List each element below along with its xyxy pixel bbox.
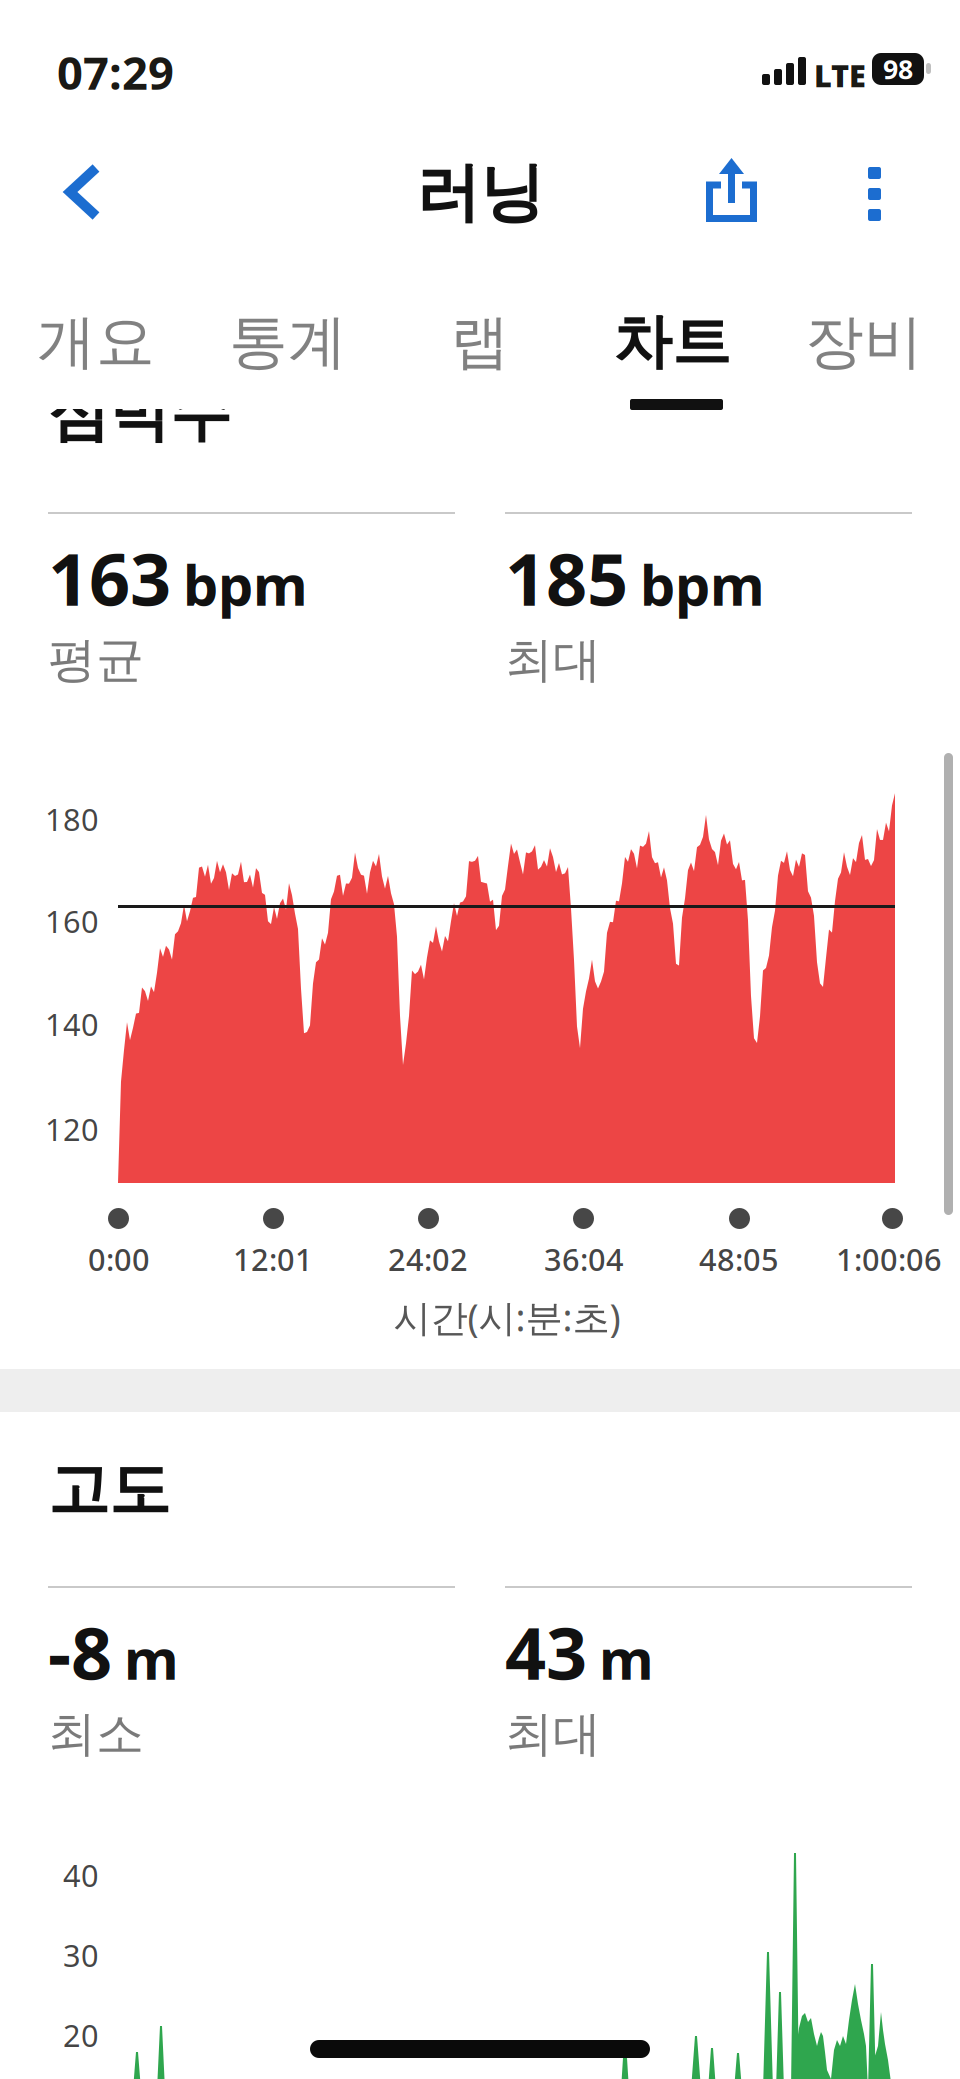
staticText: bpm bbox=[640, 547, 765, 621]
staticText: 평균 bbox=[48, 631, 144, 690]
staticText: 36:04 bbox=[544, 1239, 624, 1279]
staticText: m bbox=[599, 1621, 654, 1695]
staticText: 최대 bbox=[505, 1705, 601, 1764]
staticText: 개요 bbox=[37, 306, 155, 378]
staticText: -8 bbox=[48, 1604, 112, 1700]
staticText: 98 bbox=[883, 51, 913, 87]
staticText: 12:01 bbox=[233, 1239, 313, 1279]
staticText: 24:02 bbox=[388, 1239, 468, 1279]
staticText: m bbox=[124, 1621, 179, 1695]
staticText: 07:29 bbox=[57, 42, 174, 102]
staticText: 163 bbox=[48, 530, 171, 626]
staticText: 최소 bbox=[48, 1705, 144, 1764]
button[interactable]: 장비 bbox=[768, 300, 960, 384]
staticText: 48:05 bbox=[699, 1239, 779, 1279]
staticText: 차트 bbox=[613, 306, 731, 378]
button[interactable]: 차트 bbox=[576, 300, 768, 384]
button[interactable]: Back bbox=[64, 163, 102, 221]
staticText: 통계 bbox=[229, 306, 347, 378]
staticText: 장비 bbox=[805, 306, 923, 378]
staticText: 140 bbox=[45, 1004, 99, 1044]
staticText: 랩 bbox=[450, 306, 509, 378]
button[interactable]: Share bbox=[706, 158, 757, 222]
staticText: 43 bbox=[505, 1604, 587, 1700]
staticText: 1:00:06 bbox=[836, 1239, 942, 1279]
staticText: 20 bbox=[63, 2015, 99, 2055]
staticText: 시간(시:분:초) bbox=[393, 1292, 620, 1342]
staticText: 185 bbox=[505, 530, 628, 626]
staticText: 고도 bbox=[48, 1452, 170, 1527]
staticText: 심박수 bbox=[48, 376, 231, 451]
staticText: 160 bbox=[45, 901, 99, 941]
staticText: 40 bbox=[63, 1855, 99, 1895]
staticText: bpm bbox=[183, 547, 308, 621]
staticText: LTE bbox=[814, 55, 866, 96]
button[interactable]: 랩 bbox=[384, 300, 576, 384]
staticText: 러닝 bbox=[416, 154, 544, 232]
staticText: 180 bbox=[45, 799, 99, 839]
button[interactable]: 개요 bbox=[0, 300, 192, 384]
staticText: 0:00 bbox=[88, 1239, 150, 1279]
button[interactable]: 통계 bbox=[192, 300, 384, 384]
button[interactable]: More bbox=[868, 167, 881, 221]
staticText: 120 bbox=[45, 1109, 99, 1149]
staticText: 최대 bbox=[505, 631, 601, 690]
staticText: 30 bbox=[63, 1935, 99, 1975]
